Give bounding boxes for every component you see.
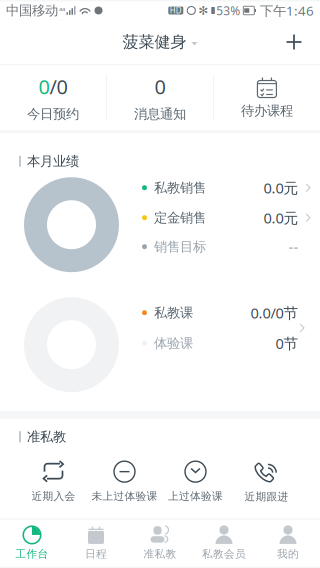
staticText: 下午1:46 — [260, 2, 314, 19]
button[interactable]: Add — [274, 22, 314, 62]
staticText: 0.0元 — [263, 178, 298, 197]
button[interactable]: 菠菜健身 — [114, 24, 205, 60]
button[interactable]: 我的 — [256, 519, 320, 566]
button[interactable]: 工作台 — [0, 519, 64, 566]
button[interactable]: 准私教 — [128, 519, 192, 566]
staticText: 0 — [154, 73, 165, 100]
button[interactable]: 私教会员 — [192, 519, 256, 566]
staticText: 销售目标 — [154, 238, 206, 255]
staticText: -- — [288, 237, 298, 256]
staticText: 中国移动 — [6, 2, 58, 19]
button[interactable]: 定金销售 — [0, 207, 320, 229]
staticText: 本月业绩 — [27, 153, 79, 169]
staticText: 菠菜健身 — [122, 32, 186, 52]
staticText: 0.0/0节 — [250, 303, 298, 322]
staticText: 0节 — [275, 333, 298, 353]
staticText: 日程 — [85, 547, 107, 560]
staticText: 今日预约 — [27, 106, 79, 122]
staticText: 上过体验课 — [168, 490, 223, 503]
button[interactable]: 近期入会 — [18, 458, 89, 506]
staticText: 0 — [39, 73, 50, 100]
button[interactable]: 未上过体验课 — [89, 458, 160, 506]
button[interactable]: 0 — [107, 73, 213, 122]
staticText: 未上过体验课 — [91, 490, 157, 503]
staticText: HD — [170, 5, 182, 16]
staticText: 准私教 — [143, 547, 176, 560]
staticText: 体验课 — [154, 335, 193, 351]
staticText: /0 — [50, 73, 68, 100]
staticText: 私教课 — [154, 304, 193, 321]
staticText: 准私教 — [27, 428, 66, 445]
staticText: ✻ — [198, 4, 208, 17]
staticText: 工作台 — [15, 547, 48, 560]
staticText: 私教销售 — [154, 179, 206, 196]
staticText: 近期跟进 — [244, 490, 288, 503]
staticText: ᵃᵃ — [59, 4, 65, 17]
staticText: 近期入会 — [31, 490, 75, 503]
button[interactable]: 待办课程 — [214, 76, 320, 119]
staticText: 53% — [216, 2, 240, 18]
staticText: 待办课程 — [241, 102, 293, 119]
button[interactable]: 私教销售 — [0, 177, 320, 199]
button[interactable]: 日程 — [64, 519, 128, 566]
staticText: 私教会员 — [202, 547, 246, 560]
staticText: 消息通知 — [134, 106, 186, 122]
staticText: 定金销售 — [154, 209, 206, 226]
button[interactable]: 私教课 — [0, 297, 320, 358]
staticText: 我的 — [277, 547, 299, 560]
button[interactable]: 上过体验课 — [160, 458, 231, 506]
button[interactable]: 近期跟进 — [231, 457, 302, 506]
button[interactable]: 0 — [0, 73, 106, 122]
staticText: 0.0元 — [263, 208, 298, 227]
